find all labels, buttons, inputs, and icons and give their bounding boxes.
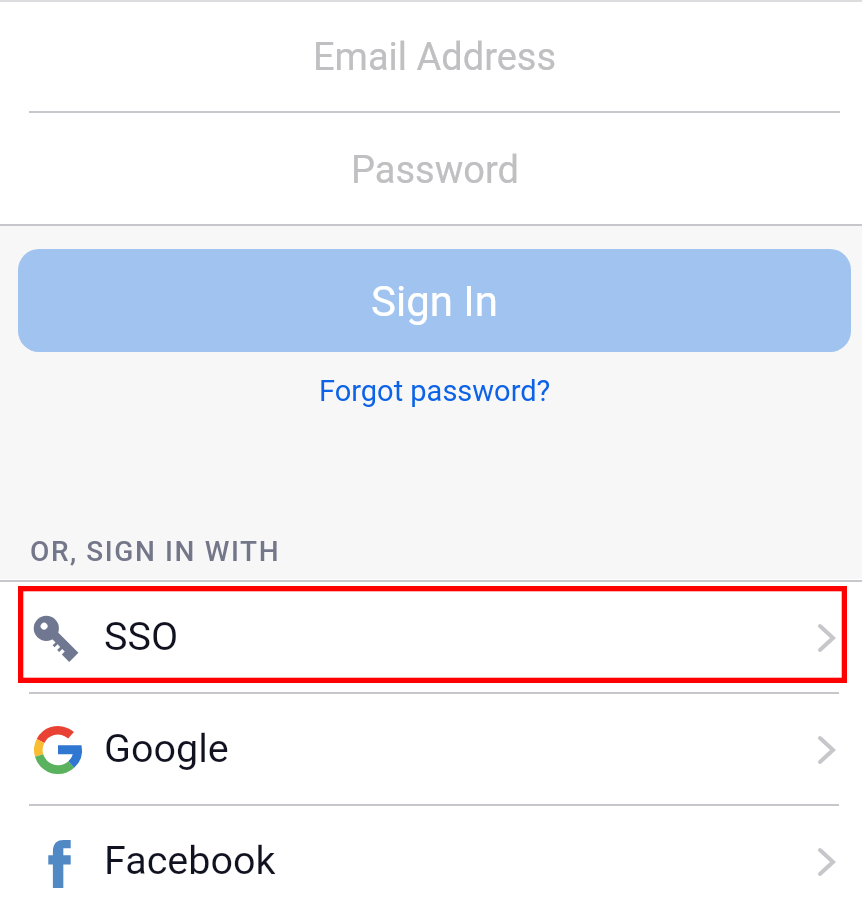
button[interactable]: Sign in with Facebook <box>0 806 862 909</box>
staticText: Sign In <box>371 277 498 326</box>
staticText: Google <box>104 725 229 771</box>
button[interactable]: Email Address <box>0 2 862 112</box>
staticText: SSO <box>104 613 179 659</box>
other: Open <box>818 736 835 764</box>
staticText: Email Address <box>313 35 557 80</box>
staticText: Forgot password? <box>319 374 551 408</box>
other: Sign in with Facebook <box>48 840 71 888</box>
button[interactable]: Password <box>0 115 862 226</box>
other: Sign in with Google <box>34 726 82 774</box>
other: Sign in with SSO <box>29 611 83 665</box>
staticText: Facebook <box>104 837 276 883</box>
button[interactable]: Sign in with Google <box>0 694 862 805</box>
staticText: OR, SIGN IN WITH <box>30 535 281 568</box>
staticText: Password <box>351 148 519 193</box>
button[interactable]: Forgot password? <box>0 363 862 419</box>
button[interactable]: Sign In <box>18 249 851 352</box>
other: Open <box>818 624 835 652</box>
button[interactable]: Sign in with SSO <box>0 582 862 693</box>
other: Open <box>818 848 835 876</box>
